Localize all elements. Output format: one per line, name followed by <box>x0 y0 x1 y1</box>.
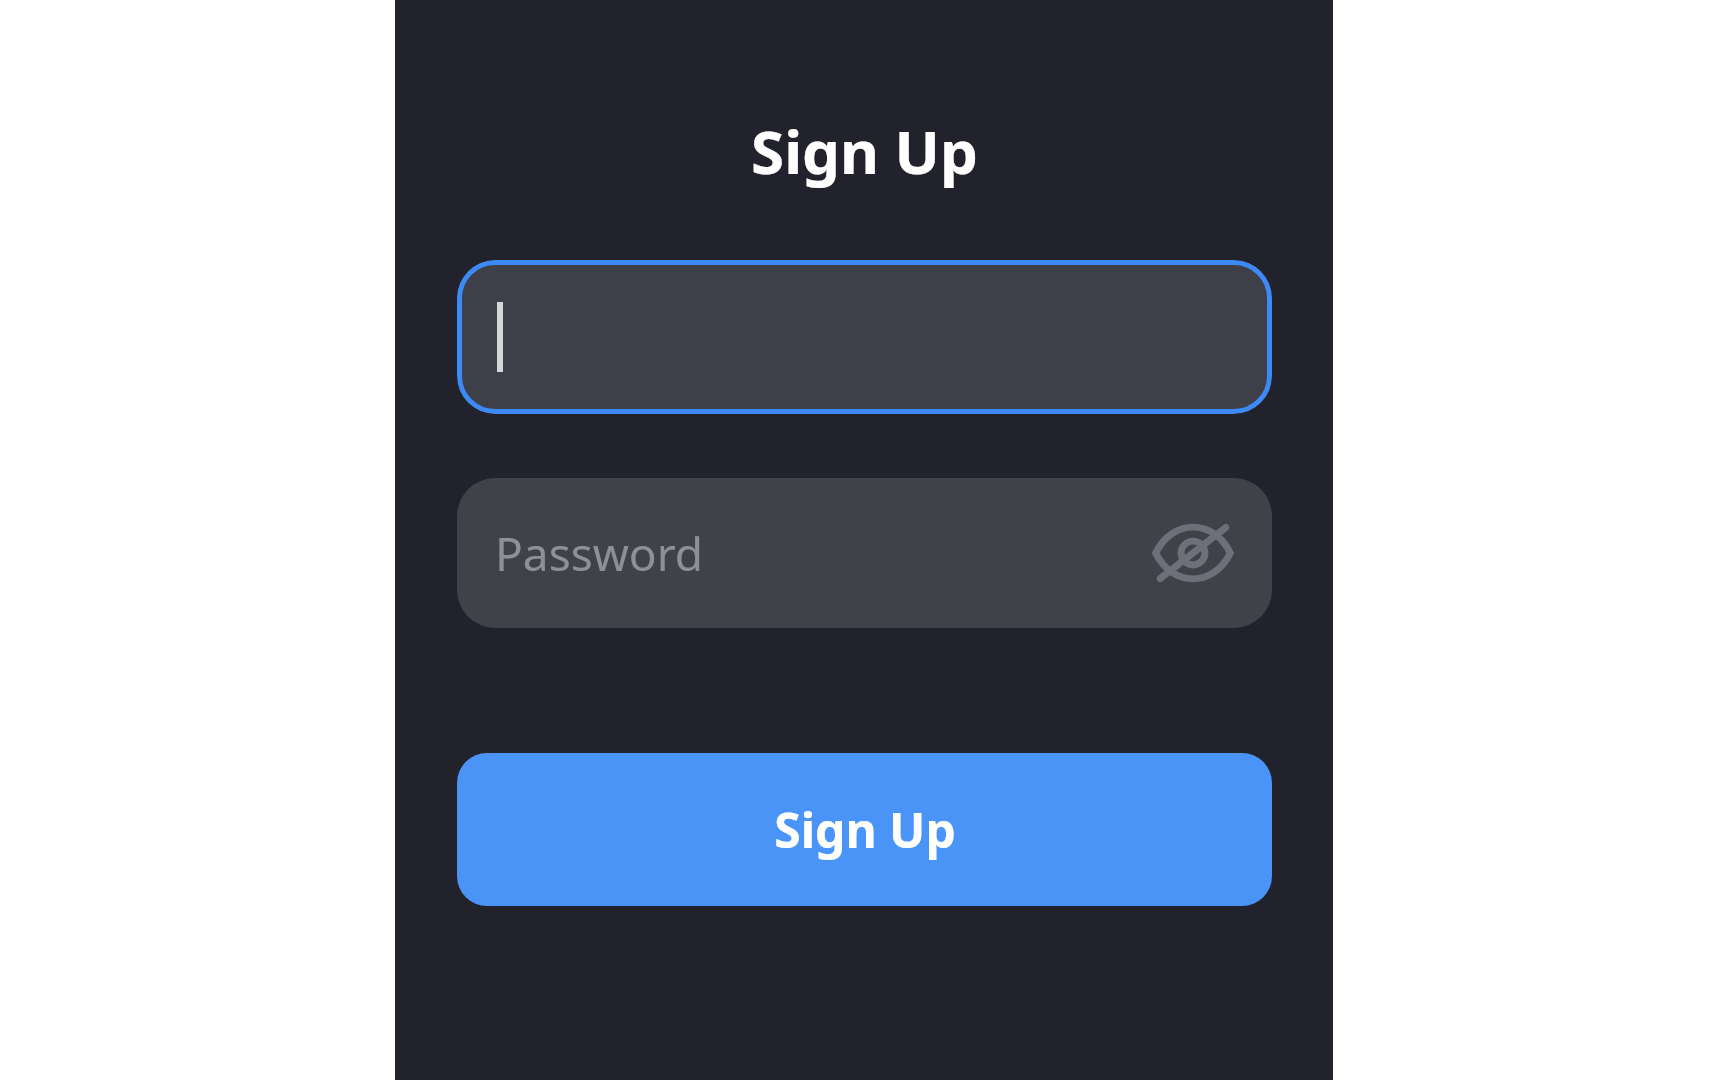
staticText: Sign Up <box>774 797 956 862</box>
staticText: Password <box>495 522 704 585</box>
button[interactable]: Password <box>457 478 1272 628</box>
button[interactable]: Email address input <box>457 260 1272 414</box>
button[interactable]: Show password <box>1146 506 1240 600</box>
staticText: Sign Up <box>751 110 978 192</box>
button[interactable]: Sign Up <box>457 753 1272 906</box>
